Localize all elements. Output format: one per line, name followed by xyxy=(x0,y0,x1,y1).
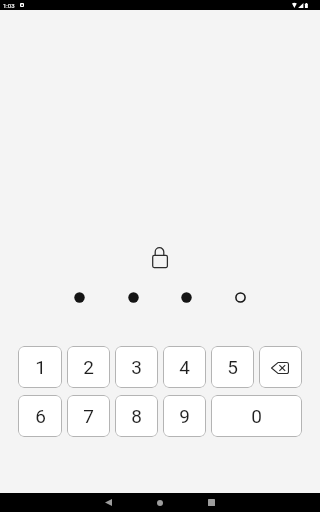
staticText: 4 xyxy=(179,356,190,378)
button[interactable]: Backspace xyxy=(259,346,302,388)
button[interactable]: Recents xyxy=(201,494,222,511)
button[interactable]: 3 xyxy=(115,346,158,388)
button[interactable]: Home xyxy=(149,494,170,511)
staticText: 7 xyxy=(83,405,94,427)
button[interactable]: 8 xyxy=(115,395,158,437)
button[interactable]: 5 xyxy=(211,346,254,388)
button[interactable]: 7 xyxy=(67,395,110,437)
button[interactable]: 4 xyxy=(163,346,206,388)
other: Locked xyxy=(151,246,168,268)
staticText: 0 xyxy=(251,405,262,427)
button[interactable]: Back xyxy=(98,494,119,511)
staticText: 9 xyxy=(179,405,190,427)
staticText: 5 xyxy=(227,356,238,378)
button[interactable]: 9 xyxy=(163,395,206,437)
staticText: 2 xyxy=(83,356,94,378)
button[interactable]: 0 xyxy=(211,395,302,437)
staticText: 1:03 xyxy=(3,2,15,9)
staticText: 6 xyxy=(35,405,46,427)
button[interactable]: 1 xyxy=(18,346,62,388)
staticText: 3 xyxy=(131,356,142,378)
staticText: 1 xyxy=(35,356,46,378)
staticText: 8 xyxy=(131,405,142,427)
button[interactable]: 6 xyxy=(18,395,62,437)
button[interactable]: 2 xyxy=(67,346,110,388)
